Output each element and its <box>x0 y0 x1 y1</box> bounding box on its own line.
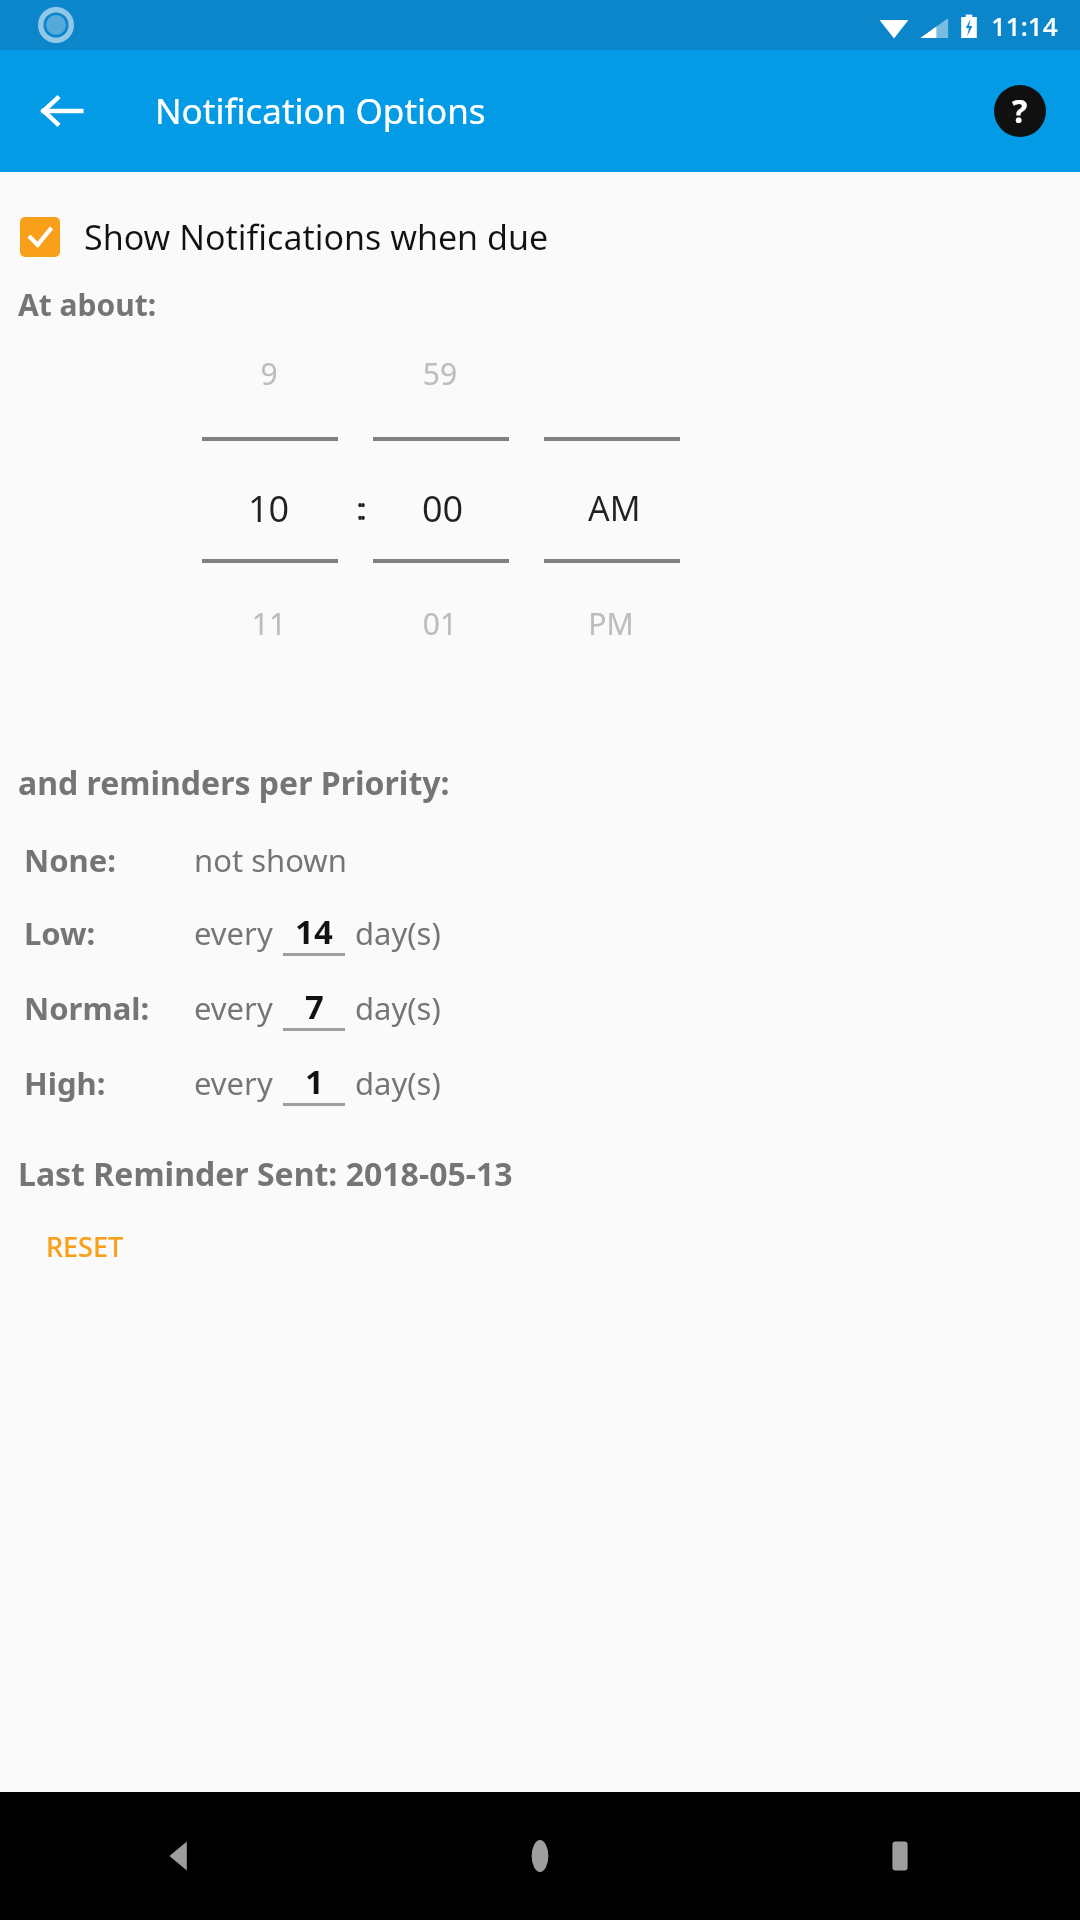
button[interactable]: 00 <box>359 475 527 541</box>
button[interactable]: Show Notifications when due <box>0 214 1080 260</box>
staticText: every <box>194 912 273 954</box>
staticText: 14 <box>295 909 333 953</box>
button[interactable]: Recent apps <box>720 1792 1080 1920</box>
staticText: 59 <box>356 353 524 394</box>
button[interactable]: High: <box>0 1059 1080 1106</box>
staticText: 11 <box>185 603 353 644</box>
staticText: 1 <box>305 1059 324 1103</box>
button[interactable]: Back <box>0 1792 360 1920</box>
staticText: day(s) <box>355 912 441 954</box>
staticText: : <box>359 488 368 529</box>
staticText: Notification Options <box>155 87 486 135</box>
button[interactable]: Home <box>360 1792 720 1920</box>
staticText: Low: <box>24 912 194 954</box>
staticText: 9 <box>185 353 353 394</box>
staticText: 10 <box>248 484 290 533</box>
staticText: 01 <box>356 603 524 644</box>
staticText: None: <box>24 839 194 881</box>
button[interactable]: Help <box>984 75 1056 147</box>
button[interactable]: None: <box>0 839 1080 881</box>
staticText: every <box>194 987 273 1029</box>
button[interactable]: 10 <box>185 475 353 541</box>
staticText: 11:14 <box>991 8 1058 43</box>
button[interactable]: Normal: <box>0 984 1080 1031</box>
staticText: day(s) <box>355 1062 441 1104</box>
staticText: Normal: <box>24 987 194 1029</box>
staticText: AM <box>588 485 641 531</box>
staticText: day(s) <box>355 987 441 1029</box>
button[interactable]: Low: <box>0 909 1080 956</box>
staticText: Show Notifications when due <box>84 214 549 260</box>
button[interactable]: AM <box>530 475 698 541</box>
staticText: and reminders per Priority: <box>18 761 450 805</box>
staticText: 00 <box>422 484 464 533</box>
staticText: ? <box>1012 89 1028 133</box>
staticText: RESET <box>46 1228 124 1265</box>
staticText: High: <box>24 1062 194 1104</box>
staticText: Last Reminder Sent: 2018-05-13 <box>18 1152 513 1196</box>
staticText: PM <box>527 603 695 644</box>
staticText: At about: <box>18 284 157 325</box>
staticText: every <box>194 1062 273 1104</box>
staticText: 7 <box>305 984 324 1028</box>
staticText: not shown <box>194 839 347 881</box>
button[interactable]: Back <box>24 73 100 149</box>
button[interactable]: RESET <box>30 1218 140 1275</box>
